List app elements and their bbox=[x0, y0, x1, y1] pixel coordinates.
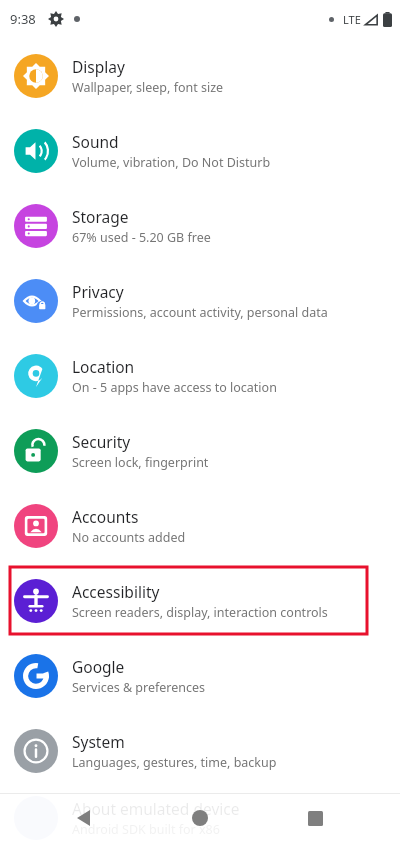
button[interactable]: Google bbox=[0, 638, 400, 713]
staticText: Storage bbox=[72, 206, 129, 227]
staticText: Display bbox=[72, 56, 125, 77]
button[interactable]: Storage bbox=[0, 188, 400, 263]
staticText: Volume, vibration, Do Not Disturb bbox=[72, 154, 271, 171]
button[interactable]: System bbox=[0, 713, 400, 788]
staticText: Wallpaper, sleep, font size bbox=[72, 79, 224, 96]
staticText: Screen readers, display, interaction con… bbox=[72, 604, 328, 621]
button[interactable]: Display bbox=[0, 38, 400, 113]
button[interactable]: Home bbox=[179, 797, 221, 839]
staticText: Security bbox=[72, 431, 131, 452]
staticText: No accounts added bbox=[72, 529, 186, 546]
staticText: 67% used - 5.20 GB free bbox=[72, 229, 211, 246]
staticText: Services & preferences bbox=[72, 679, 206, 696]
staticText: Permissions, account activity, personal … bbox=[72, 304, 328, 321]
staticText: Languages, gestures, time, backup bbox=[72, 754, 277, 771]
button[interactable]: Back bbox=[62, 797, 104, 839]
staticText: 9:38 bbox=[10, 10, 36, 28]
staticText: System bbox=[72, 731, 125, 752]
staticText: LTE bbox=[343, 12, 361, 27]
staticText: On - 5 apps have access to location bbox=[72, 379, 277, 396]
staticText: Accounts bbox=[72, 506, 139, 527]
button[interactable]: Recent apps bbox=[294, 797, 336, 839]
button[interactable]: Location bbox=[0, 338, 400, 413]
staticText: Screen lock, fingerprint bbox=[72, 454, 209, 471]
button[interactable]: Privacy bbox=[0, 263, 400, 338]
button[interactable]: Security bbox=[0, 413, 400, 488]
button[interactable]: Accounts bbox=[0, 488, 400, 563]
staticText: About emulated device bbox=[72, 798, 240, 819]
staticText: Location bbox=[72, 356, 135, 377]
staticText: Sound bbox=[72, 131, 119, 152]
staticText: Privacy bbox=[72, 281, 124, 302]
staticText: Android SDK built for x86 bbox=[72, 821, 220, 838]
button[interactable]: Accessibility bbox=[0, 563, 400, 638]
staticText: Accessibility bbox=[72, 581, 160, 602]
staticText: Google bbox=[72, 656, 125, 677]
button[interactable]: Sound bbox=[0, 113, 400, 188]
